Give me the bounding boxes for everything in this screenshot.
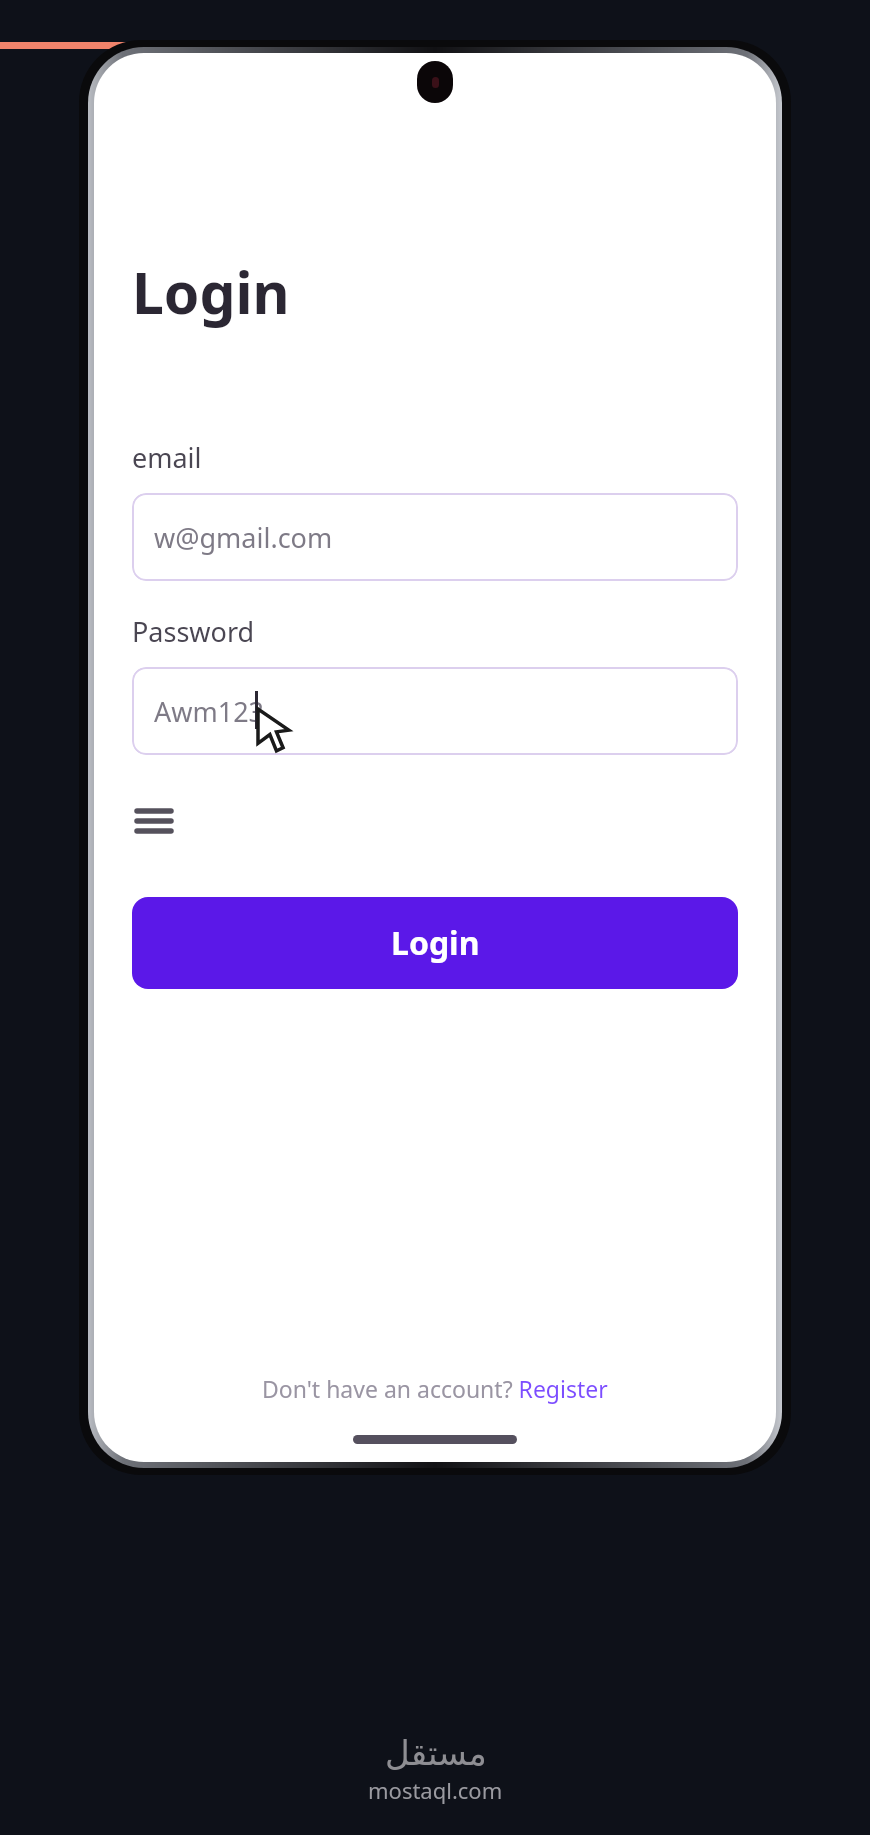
staticText: Password: [132, 613, 255, 650]
button[interactable]: w@gmail.com: [132, 493, 738, 581]
staticText: Don't have an account? Register: [262, 1373, 608, 1404]
staticText: Awm123: [154, 693, 265, 730]
button[interactable]: Login: [132, 897, 738, 989]
button[interactable]: Don't have an account? Register: [262, 1373, 608, 1404]
staticText: mostaql.com: [368, 1775, 503, 1805]
staticText: Login: [132, 253, 290, 331]
button[interactable]: Menu: [112, 779, 196, 863]
staticText: email: [132, 439, 202, 476]
staticText: مستقل: [385, 1733, 487, 1773]
staticText: w@gmail.com: [154, 519, 333, 556]
staticText: Login: [391, 921, 480, 965]
button[interactable]: Awm123: [132, 667, 738, 755]
